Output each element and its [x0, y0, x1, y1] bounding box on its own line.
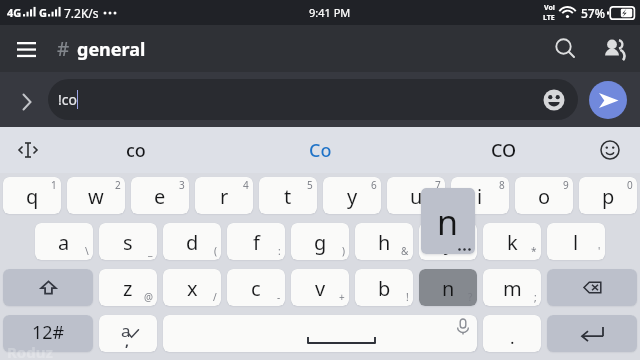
staticText: \ [85, 244, 89, 258]
button[interactable]: Change language [99, 315, 157, 352]
staticText: co [126, 138, 146, 163]
button[interactable]: Search [544, 27, 588, 71]
staticText: 7.2K/s [64, 5, 99, 21]
staticText: 8 [499, 178, 505, 192]
staticText: v [315, 275, 326, 302]
staticText: . [510, 326, 515, 349]
staticText: 2 [115, 178, 121, 192]
button[interactable]: n [419, 269, 477, 306]
staticText: !co [58, 90, 77, 109]
staticText: k [507, 229, 518, 256]
button[interactable]: Send message [589, 81, 627, 119]
button[interactable]: d [163, 223, 221, 260]
staticText: 12# [32, 320, 65, 345]
button[interactable]: Symbols [3, 315, 93, 352]
button[interactable]: e [131, 177, 189, 214]
button[interactable]: k [483, 223, 541, 260]
staticText: y [347, 183, 358, 210]
staticText: i [477, 183, 483, 210]
button[interactable]: c [227, 269, 285, 306]
button[interactable]: y [323, 177, 381, 214]
button[interactable]: j [419, 223, 477, 260]
staticText: - [277, 290, 281, 304]
button[interactable]: Emoji keyboard [588, 128, 632, 172]
staticText: ) [342, 244, 345, 258]
staticText: d [186, 229, 199, 256]
button[interactable]: m [483, 269, 541, 306]
staticText: / [213, 290, 217, 304]
button[interactable]: o [515, 177, 573, 214]
staticText: 1 [51, 178, 57, 192]
staticText: w [88, 183, 104, 210]
button[interactable]: a [35, 223, 93, 260]
staticText: ' [598, 244, 601, 258]
staticText: s [123, 229, 133, 256]
button[interactable]: h [355, 223, 413, 260]
button[interactable]: Open navigation menu [4, 27, 48, 71]
button[interactable]: u [387, 177, 445, 214]
button[interactable]: Members [593, 27, 637, 71]
staticText: : [278, 244, 281, 258]
button[interactable]: Move cursor [6, 128, 50, 172]
button[interactable]: Expand actions [8, 81, 44, 117]
button[interactable]: s [99, 223, 157, 260]
staticText: c [251, 275, 261, 302]
staticText: ; [534, 290, 537, 304]
staticText: 7 [435, 178, 441, 192]
staticText: ! [406, 290, 409, 304]
staticText: n [437, 199, 459, 245]
button[interactable]: Shift [3, 269, 93, 306]
button[interactable]: Space [163, 315, 477, 352]
staticText: p [602, 183, 615, 210]
button[interactable]: x [163, 269, 221, 306]
staticText: CO [491, 138, 517, 163]
button[interactable]: w [67, 177, 125, 214]
button[interactable]: p [579, 177, 637, 214]
staticText: q [26, 183, 39, 210]
staticText: @ [144, 290, 153, 304]
button[interactable]: f [227, 223, 285, 260]
staticText: 3 [179, 178, 185, 192]
staticText: 4G [7, 5, 22, 20]
staticText: 9 [563, 178, 569, 192]
button[interactable]: q [3, 177, 61, 214]
button[interactable]: Backspace [547, 269, 637, 306]
button[interactable]: b [355, 269, 413, 306]
staticText: Vol [544, 3, 555, 13]
button[interactable]: g [291, 223, 349, 260]
staticText: z [123, 275, 133, 302]
staticText: & [401, 244, 409, 258]
staticText: 4 [243, 178, 249, 192]
staticText: 6 [371, 178, 377, 192]
staticText: j [445, 229, 451, 256]
button[interactable]: v [291, 269, 349, 306]
staticText: x [187, 275, 198, 302]
button[interactable]: co [56, 127, 216, 173]
staticText: , [125, 331, 129, 350]
button[interactable]: l [547, 223, 605, 260]
staticText: ? [468, 290, 473, 304]
staticText: t [284, 183, 292, 210]
button[interactable]: i [451, 177, 509, 214]
staticText: n [442, 275, 455, 302]
button[interactable]: CO [424, 127, 584, 173]
staticText: u [410, 183, 423, 210]
staticText: h [378, 229, 391, 256]
staticText: a [121, 319, 131, 342]
button[interactable]: r [195, 177, 253, 214]
button[interactable]: Co [240, 127, 400, 173]
staticText: a [58, 229, 70, 256]
staticText: r [220, 183, 229, 210]
button[interactable]: Enter [547, 315, 637, 352]
button[interactable]: Emoji [541, 87, 567, 113]
button[interactable]: !co [48, 79, 578, 120]
staticText: 57% [581, 5, 605, 21]
staticText: 5 [307, 178, 313, 192]
button[interactable]: z [99, 269, 157, 306]
button[interactable]: . [483, 315, 541, 352]
staticText: m [503, 275, 522, 302]
staticText: e [154, 183, 166, 210]
staticText: " [468, 244, 473, 258]
button[interactable]: t [259, 177, 317, 214]
staticText: general [77, 37, 146, 62]
